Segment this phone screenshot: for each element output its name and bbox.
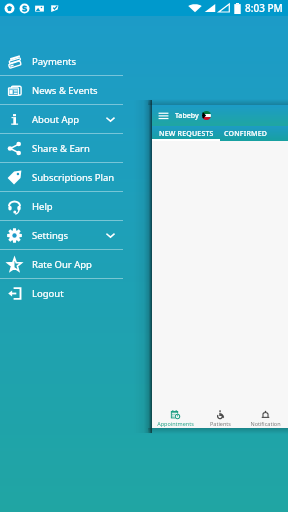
staticText: 8:03 PM (245, 1, 283, 15)
button[interactable]: Settings (0, 221, 144, 249)
button[interactable]: Logout (0, 279, 144, 307)
staticText: NEW REQUESTS (159, 129, 214, 139)
button[interactable]: News & Events (0, 76, 144, 104)
staticText: Logout (32, 287, 64, 300)
staticText: Appointments (157, 420, 194, 427)
button[interactable]: Appointments (152, 404, 198, 428)
staticText: Tabeby (175, 111, 199, 121)
staticText: Settings (32, 229, 69, 242)
button[interactable]: Change language (202, 111, 211, 120)
button[interactable]: About App (0, 105, 144, 133)
staticText: Patients (210, 420, 231, 427)
button[interactable]: Open navigation drawer (158, 110, 169, 121)
button[interactable]: NEW REQUESTS (152, 126, 220, 141)
staticText: Share & Earn (32, 142, 90, 155)
button[interactable]: Patients (198, 404, 243, 428)
button[interactable]: CONFIRMED (220, 126, 272, 141)
staticText: News & Events (32, 84, 98, 97)
staticText: Rate Our App (32, 258, 92, 271)
staticText: Notification (250, 420, 281, 427)
button[interactable]: Rate Our App (0, 250, 144, 278)
button[interactable]: Help (0, 192, 144, 220)
button[interactable]: Notification (243, 404, 288, 428)
staticText: About App (32, 113, 80, 126)
staticText: CONFIRMED (224, 129, 268, 139)
staticText: Help (32, 200, 53, 213)
button[interactable]: Share & Earn (0, 134, 144, 162)
staticText: Subscriptions Plan (32, 171, 115, 184)
button[interactable]: Subscriptions Plan (0, 163, 144, 191)
staticText: Payments (32, 55, 77, 68)
button[interactable]: Payments (0, 47, 144, 75)
